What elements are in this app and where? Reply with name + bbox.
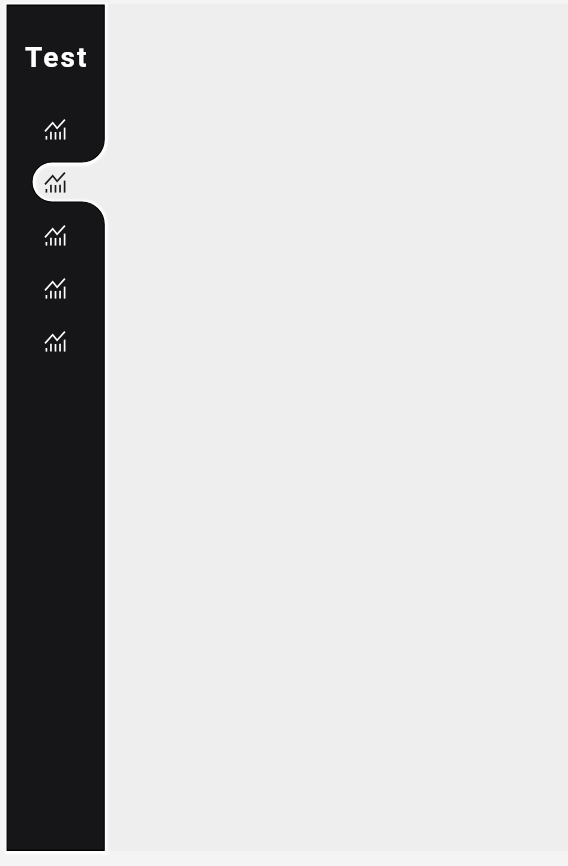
button[interactable]: Analytics section 5 xyxy=(6,319,104,363)
button[interactable]: Analytics section 4 xyxy=(6,266,104,310)
button[interactable]: Analytics section 2 xyxy=(6,160,104,204)
staticText: Test xyxy=(25,41,89,74)
button[interactable]: Analytics section 3 xyxy=(6,213,104,257)
button[interactable]: Analytics section 1 xyxy=(6,107,104,151)
